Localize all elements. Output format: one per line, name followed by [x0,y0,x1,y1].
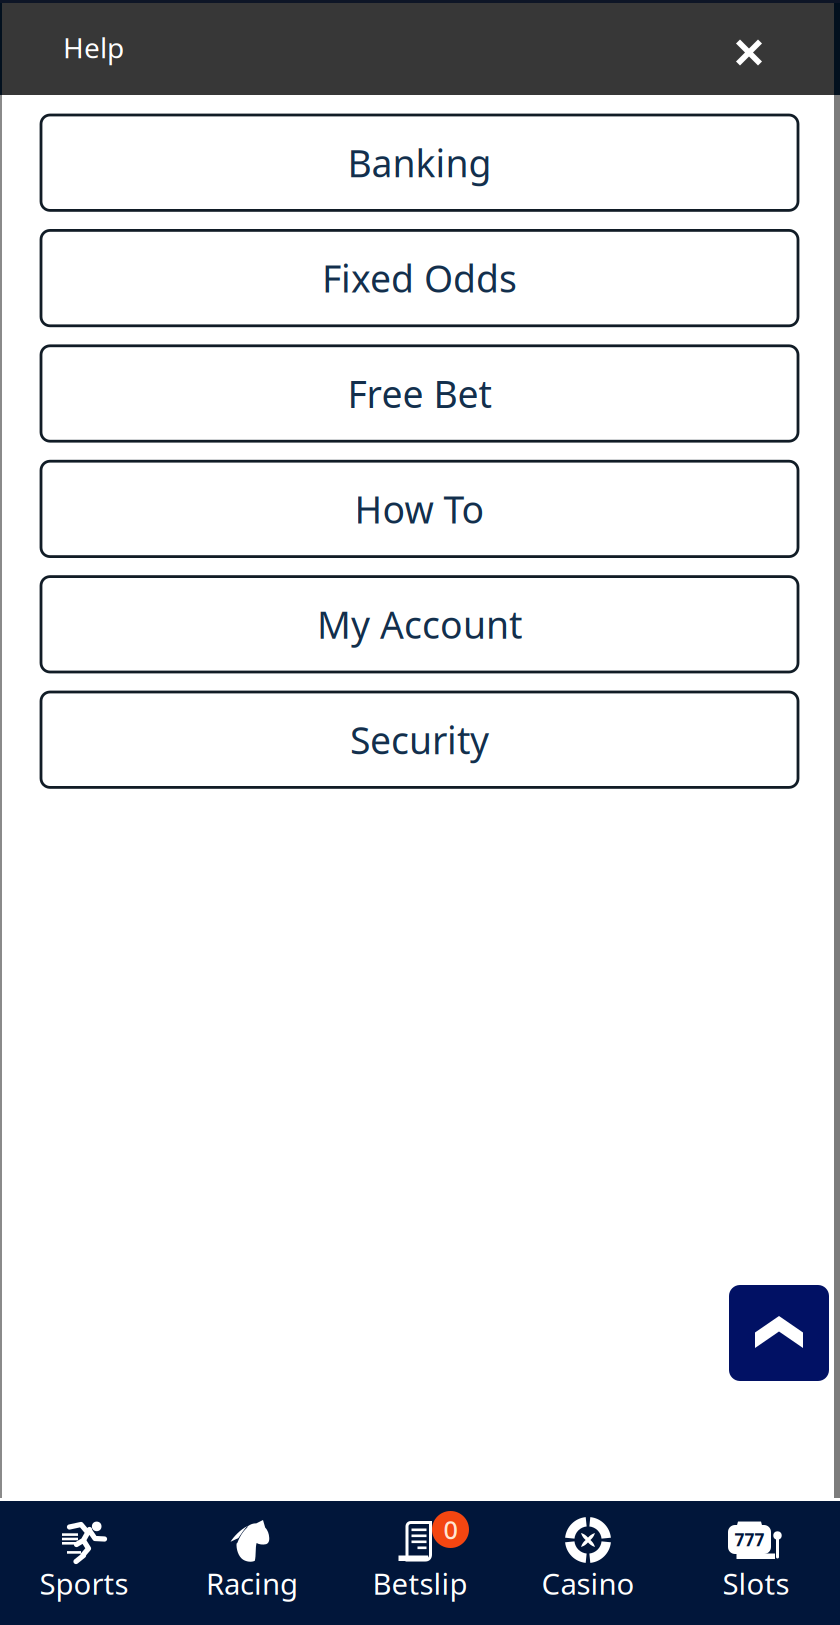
staticText: Fixed Odds [322,253,517,303]
staticText: Casino [541,1564,634,1603]
staticText: Slots [722,1564,789,1603]
button[interactable]: Casino [504,1517,672,1603]
button[interactable]: 777 [672,1517,840,1603]
button[interactable]: Free Bet [41,346,798,441]
staticText: Security [350,715,489,764]
staticText: Help [63,29,124,66]
staticText: Sports [39,1564,128,1603]
staticText: Banking [347,138,491,187]
button[interactable]: Banking [41,115,798,210]
button[interactable]: Fixed Odds [41,230,798,326]
button[interactable]: Sports [0,1517,168,1603]
staticText: 777 [734,1528,764,1551]
staticText: Betslip [372,1564,467,1603]
button[interactable]: My Account [41,577,798,672]
staticText: Racing [206,1564,298,1603]
button[interactable]: Close [722,20,776,74]
staticText: 0 [443,1513,457,1546]
staticText: How To [354,484,484,534]
staticText: My Account [317,599,522,649]
staticText: Free Bet [347,369,491,418]
button[interactable]: Scroll to top [729,1285,829,1381]
button[interactable]: 0 [336,1517,504,1603]
button[interactable]: How To [41,461,798,557]
button[interactable]: Security [41,692,798,787]
button[interactable]: Racing [168,1517,336,1603]
